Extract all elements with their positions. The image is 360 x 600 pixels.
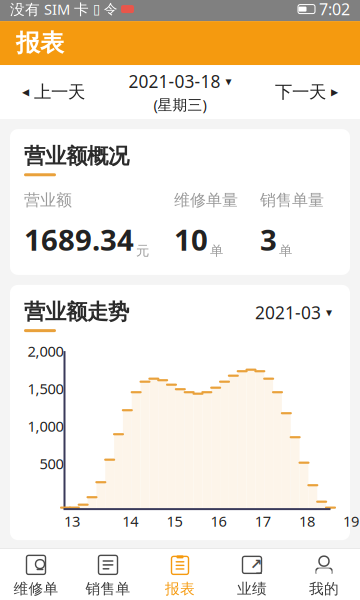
staticText: 1689.34 xyxy=(24,220,134,259)
staticText: 17 xyxy=(255,511,271,531)
staticText: 报表 xyxy=(16,28,64,58)
staticText: 业绩 xyxy=(237,580,267,598)
staticText: 1,500 xyxy=(27,379,63,398)
staticText: 上一天 xyxy=(34,81,85,103)
staticText: ▾ xyxy=(326,306,332,319)
staticText: 500 xyxy=(39,454,63,473)
button[interactable]: 下一天 xyxy=(269,73,344,111)
staticText: 18 xyxy=(299,511,315,531)
staticText: 营业额 xyxy=(24,190,72,210)
staticText: ↗ xyxy=(250,556,262,572)
button[interactable]: ↗ xyxy=(216,550,288,600)
staticText: 16 xyxy=(211,511,227,531)
staticText: 1,000 xyxy=(27,416,63,436)
staticText: ▯ xyxy=(93,1,100,17)
staticText: 单 xyxy=(210,242,223,259)
staticText: 下一天 xyxy=(275,81,326,103)
staticText: 营业额走势 xyxy=(24,299,129,325)
button[interactable]: 维修单 xyxy=(0,550,72,600)
staticText: 我的 xyxy=(309,580,339,598)
staticText: 19 xyxy=(343,511,359,531)
staticText: ◀ xyxy=(22,87,29,97)
staticText: 2021-03 xyxy=(255,301,321,324)
staticText: 营业额概况 xyxy=(24,143,129,169)
button[interactable]: 报表 xyxy=(144,550,216,600)
staticText: 13 xyxy=(64,511,80,531)
staticText: 7:02 xyxy=(319,0,350,20)
staticText: 2,000 xyxy=(27,341,63,361)
staticText: 2021-03-18 xyxy=(128,70,220,93)
staticText: 单 xyxy=(279,242,292,259)
button[interactable]: ◀ xyxy=(16,73,91,111)
button[interactable]: 2021-03 xyxy=(251,299,336,326)
staticText: 报表 xyxy=(165,580,195,598)
staticText: 销售单量 xyxy=(260,190,324,210)
staticText: 维修单 xyxy=(13,580,58,598)
staticText: 销售单 xyxy=(85,580,130,598)
button[interactable]: 我的 xyxy=(288,550,360,600)
staticText: 没有 SIM 卡 xyxy=(10,0,89,19)
staticText: 元 xyxy=(136,242,149,259)
staticText: ▾ xyxy=(225,74,231,88)
staticText: (星期三) xyxy=(153,95,206,114)
button[interactable]: 销售单 xyxy=(72,550,144,600)
staticText: 维修单量 xyxy=(174,190,238,210)
staticText: 令 xyxy=(104,1,117,17)
staticText: 10 xyxy=(174,220,208,259)
staticText: 15 xyxy=(166,511,182,531)
staticText: ▶ xyxy=(331,87,338,97)
staticText: 14 xyxy=(122,511,138,531)
staticText: 3 xyxy=(260,220,277,259)
button[interactable]: 2021-03-18 xyxy=(120,66,239,118)
